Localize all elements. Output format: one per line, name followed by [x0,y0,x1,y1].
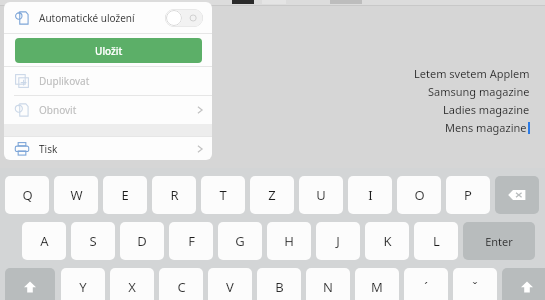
button[interactable]: O [397,176,441,214]
staticText: G [235,232,245,250]
staticText: D [137,232,147,250]
staticText: T [219,186,227,204]
button[interactable]: H [267,222,311,260]
button[interactable]: S [71,222,115,260]
staticText: O [414,186,425,204]
button[interactable]: Y [61,268,105,300]
staticText: Z [268,186,276,204]
button[interactable]: Enter [463,222,535,260]
staticText: ˇ [472,278,478,296]
staticText: Duplikovat [39,74,90,88]
staticText: W [70,186,83,204]
staticText: Enter [485,234,513,249]
staticText: F [188,232,195,250]
button[interactable]: L [414,222,458,260]
staticText: Y [79,278,87,296]
button[interactable]: D [120,222,164,260]
staticText: R [170,186,179,204]
staticText: A [40,232,49,250]
button[interactable]: B [257,268,301,300]
button[interactable]: Q [5,176,49,214]
button[interactable]: I [348,176,392,214]
staticText: P [464,186,472,204]
button[interactable]: Obnovit [4,96,212,124]
staticText: M [371,278,383,296]
button[interactable]: T [201,176,245,214]
staticText: S [89,232,97,250]
staticText: Mens magazine [445,120,527,135]
staticText: Uložit [95,44,123,58]
button[interactable]: W [54,176,98,214]
button[interactable]: Tisk [4,137,212,160]
button[interactable]: P [446,176,490,214]
button[interactable]: Automatické uložení [4,3,212,33]
staticText: H [284,232,294,250]
staticText: Q [22,186,33,204]
button[interactable]: A [22,222,66,260]
staticText: Samsung magazine [428,84,530,99]
button[interactable]: R [152,176,196,214]
button[interactable]: ˇ [453,268,497,300]
staticText: K [383,232,392,250]
button[interactable]: K [365,222,409,260]
staticText: N [323,278,333,296]
button[interactable]: Shift [5,268,55,300]
button[interactable]: Backspace [495,176,539,214]
button[interactable]: V [208,268,252,300]
button[interactable]: Z [250,176,294,214]
staticText: Obnovit [39,103,77,117]
staticText: I [368,186,373,204]
staticText: E [121,186,129,204]
button[interactable]: U [299,176,343,214]
button[interactable]: ´ [404,268,448,300]
button[interactable]: C [159,268,203,300]
staticText: Automatické uložení [39,11,135,25]
staticText: V [226,278,234,296]
button[interactable]: J [316,222,360,260]
button[interactable]: M [355,268,399,300]
button[interactable]: E [103,176,147,214]
staticText: X [128,278,136,296]
button[interactable]: G [218,222,262,260]
staticText: Letem svetem Applem [414,66,530,81]
staticText: Tisk [39,142,58,156]
button[interactable]: Automatic saving toggle, off [165,9,203,27]
button[interactable]: N [306,268,350,300]
staticText: C [177,278,186,296]
staticText: B [275,278,284,296]
button[interactable]: Shift [502,268,545,300]
staticText: L [433,232,440,250]
button[interactable]: F [169,222,213,260]
staticText: U [316,186,326,204]
staticText: ´ [424,278,428,296]
button[interactable]: Duplikovat [4,67,212,95]
button[interactable]: Uložit [15,38,202,63]
staticText: Ladies magazine [443,102,530,117]
button[interactable]: X [110,268,154,300]
staticText: J [336,232,340,250]
